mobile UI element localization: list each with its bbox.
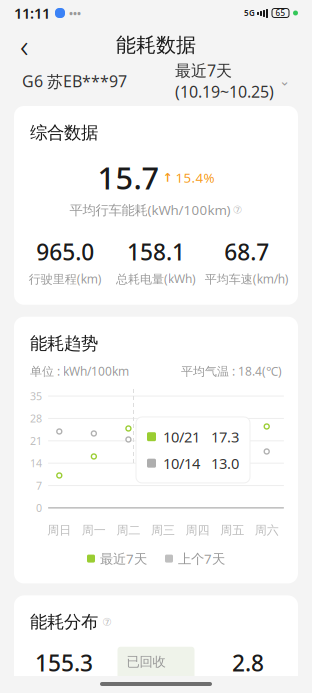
staticText: 35 [30,389,42,403]
staticText: 2.8 [232,648,264,678]
staticText: 10/21 [163,427,200,446]
staticText: 能耗趋势 [30,333,98,354]
staticText: 周五 [220,523,244,538]
staticText: 28 [30,411,42,426]
staticText: 行驶里程(km) [29,271,102,287]
staticText: 68.7 [224,237,269,267]
staticText: ‹ [20,24,28,66]
staticText: 15.7 [97,157,159,198]
staticText: ↑ [162,171,172,184]
staticText: ⌄ [279,73,290,88]
staticText: 单位 : kWh/100km [30,363,129,379]
staticText: 行程耗电(kWh) [24,682,104,693]
staticText: 上个7天 [178,550,225,567]
staticText: 17.3 [211,427,239,446]
staticText: ⑦ [232,204,242,216]
staticText: 能耗分布 [30,611,98,633]
staticText: 能耗数据 [116,33,196,57]
staticText: 平均气温 : 18.4(℃) [181,363,282,379]
button[interactable]: Back [4,27,44,63]
staticText: G6 苏EB***97 [22,70,127,92]
staticText: 11:11 [14,3,50,23]
staticText: 最近7天 [100,550,147,567]
staticText: 155.3 [35,648,93,678]
staticText: 0 [36,501,42,515]
staticText: 平均车速(km/h) [205,271,289,287]
staticText: 13.0 [211,453,239,473]
staticText: 15.4% [175,169,214,186]
staticText: 周日 [47,523,71,538]
staticText: 已回收 [126,654,165,670]
button[interactable]: 最近7天 (10.19~10.25) [175,54,290,108]
staticText: ⑦ [102,616,112,628]
staticText: 平均行车能耗(kWh/100km) [69,201,230,219]
staticText: 周四 [186,523,210,538]
staticText: 5G [244,8,255,18]
staticText: 周二 [116,523,140,538]
staticText: 综合数据 [30,122,98,143]
staticText: 停车耗电(kWh) [208,682,288,693]
staticText: 14 [30,456,42,470]
staticText: 21 [30,434,42,448]
staticText: 总耗电量(kWh) [116,271,196,287]
staticText: ••• [69,6,81,20]
staticText: 周三 [151,523,175,538]
staticText: 10/14 [163,453,200,473]
staticText: 65 [275,8,285,18]
staticText: 48.0kWh [126,672,185,692]
staticText: 158.1 [127,237,185,267]
staticText: 7 [36,478,42,493]
staticText: 965.0 [36,237,94,267]
staticText: 最近7天 (10.19~10.25) [175,60,274,102]
staticText: 周一 [82,523,106,538]
staticText: 周六 [255,523,279,538]
